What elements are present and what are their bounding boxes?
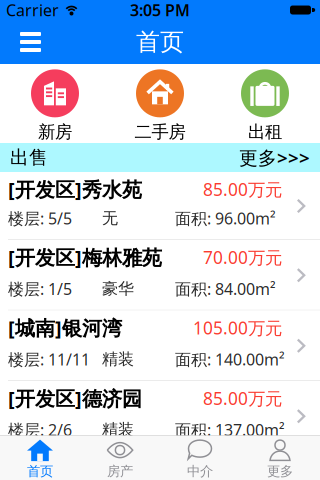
staticText: 精装: [102, 349, 134, 369]
staticText: 3:05 PM: [130, 0, 190, 21]
staticText: 楼层: 1/5: [8, 278, 72, 299]
staticText: 楼层: 11/11: [8, 349, 90, 370]
staticText: 面积: 140.00m²: [175, 349, 285, 370]
staticText: 85.00万元: [203, 387, 282, 410]
staticText: Carrier: [6, 0, 59, 21]
button[interactable]: 首页: [0, 436, 80, 480]
staticText: 房产: [107, 463, 133, 479]
staticText: 面积: 84.00m²: [175, 278, 276, 299]
button[interactable]: 中介: [160, 436, 240, 480]
staticText: 首页: [27, 463, 53, 479]
staticText: [开发区]梅林雅苑: [8, 244, 162, 271]
staticText: 85.00万元: [203, 178, 282, 201]
staticText: 无: [102, 208, 118, 228]
staticText: 中介: [187, 463, 213, 479]
button[interactable]: [开发区]德济园: [0, 381, 320, 451]
staticText: 首页: [136, 27, 184, 57]
staticText: 更多>>>: [239, 145, 310, 170]
button[interactable]: 二手房: [107, 64, 212, 143]
button[interactable]: 更多>>>: [239, 145, 320, 170]
staticText: [城南]银河湾: [8, 314, 122, 341]
staticText: 豪华: [102, 279, 134, 298]
staticText: [开发区]德济园: [8, 385, 142, 412]
button[interactable]: 房产: [80, 436, 160, 480]
button[interactable]: [开发区]秀水苑: [0, 172, 320, 240]
staticText: [开发区]秀水苑: [8, 176, 142, 203]
staticText: 70.00万元: [203, 246, 282, 269]
staticText: 105.00万元: [193, 316, 282, 339]
button[interactable]: 更多: [240, 436, 320, 480]
staticText: 楼层: 5/5: [8, 208, 72, 229]
staticText: 精装: [102, 420, 134, 439]
staticText: 面积: 96.00m²: [175, 208, 276, 229]
staticText: 出售: [10, 146, 48, 169]
staticText: 更多: [267, 463, 293, 479]
button[interactable]: 新房: [2, 64, 107, 143]
button[interactable]: 出租: [212, 64, 317, 143]
staticText: 楼层: 2/6: [8, 419, 72, 440]
staticText: 出租: [248, 121, 282, 143]
staticText: 新房: [38, 121, 72, 143]
button[interactable]: [城南]银河湾: [0, 310, 320, 381]
staticText: 面积: 137.00m²: [175, 419, 285, 440]
button[interactable]: [开发区]梅林雅苑: [0, 240, 320, 310]
button[interactable]: 菜单: [0, 26, 41, 58]
staticText: 二手房: [134, 121, 185, 143]
